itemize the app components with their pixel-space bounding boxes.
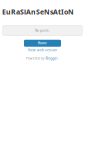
staticText: . [58,56,59,60]
button[interactable]: Blogger [45,56,57,60]
button[interactable]: Home [24,40,61,47]
staticText: Powered by [26,56,45,60]
button[interactable]: View web version [28,47,57,53]
staticText: View web version [28,48,57,52]
staticText: Blogger [45,56,57,60]
staticText: No posts. [35,28,50,33]
staticText: EuRaSiAnSeNsAtIoN [2,7,74,16]
staticText: Home [38,41,47,45]
